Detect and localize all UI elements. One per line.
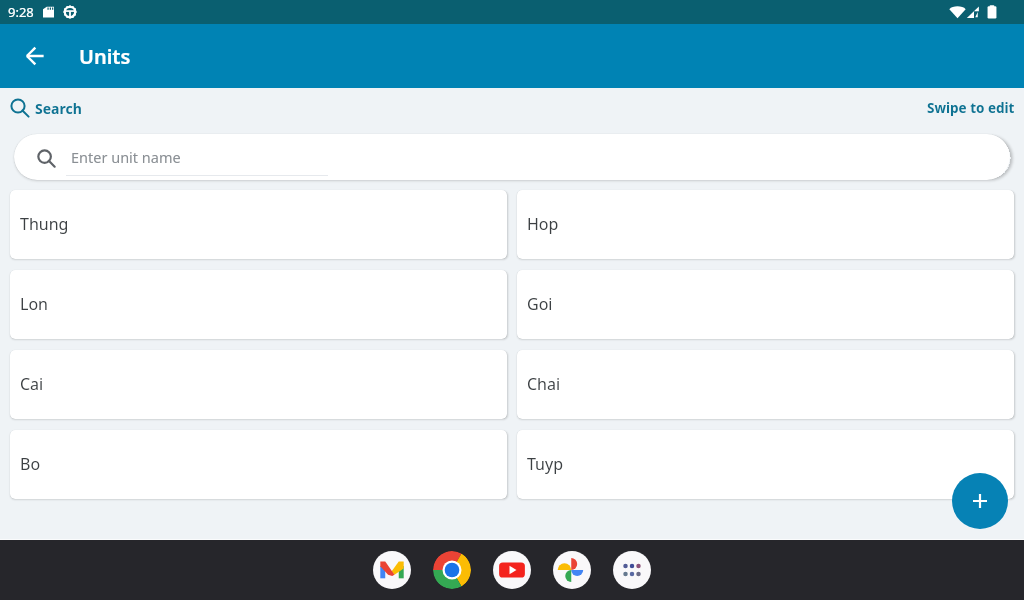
button[interactable]: Cai bbox=[10, 350, 507, 419]
button[interactable]: YouTube bbox=[493, 551, 531, 589]
staticText: Search bbox=[35, 99, 82, 118]
button[interactable]: Back bbox=[14, 35, 56, 77]
button[interactable]: Chrome bbox=[433, 551, 471, 589]
staticText: 9:28 bbox=[8, 3, 34, 21]
staticText: Swipe to edit bbox=[927, 99, 1015, 117]
staticText: Units bbox=[79, 43, 131, 70]
staticText: Hop bbox=[527, 213, 559, 235]
staticText: Goi bbox=[527, 293, 553, 315]
staticText: Thung bbox=[20, 213, 69, 235]
button[interactable]: Tuyp bbox=[517, 430, 1014, 499]
staticText: Cai bbox=[20, 373, 44, 395]
staticText: Tuyp bbox=[527, 453, 563, 475]
button[interactable]: Gmail bbox=[373, 551, 411, 589]
staticText: Enter unit name bbox=[71, 147, 181, 167]
button[interactable]: Lon bbox=[10, 270, 507, 339]
button[interactable]: Hop bbox=[517, 190, 1014, 259]
button[interactable]: Search bbox=[0, 92, 92, 124]
staticText: Lon bbox=[20, 293, 48, 315]
button[interactable]: Bo bbox=[10, 430, 507, 499]
button[interactable]: Thung bbox=[10, 190, 507, 259]
button[interactable]: All apps bbox=[613, 551, 651, 589]
button[interactable]: Photos bbox=[553, 551, 591, 589]
button[interactable]: Goi bbox=[517, 270, 1014, 339]
staticText: Bo bbox=[20, 453, 41, 475]
button[interactable]: Swipe to edit bbox=[917, 93, 1024, 123]
staticText: Chai bbox=[527, 373, 561, 395]
button[interactable]: Add unit bbox=[952, 473, 1008, 529]
button[interactable]: Enter unit name bbox=[14, 134, 1010, 180]
button[interactable]: Chai bbox=[517, 350, 1014, 419]
